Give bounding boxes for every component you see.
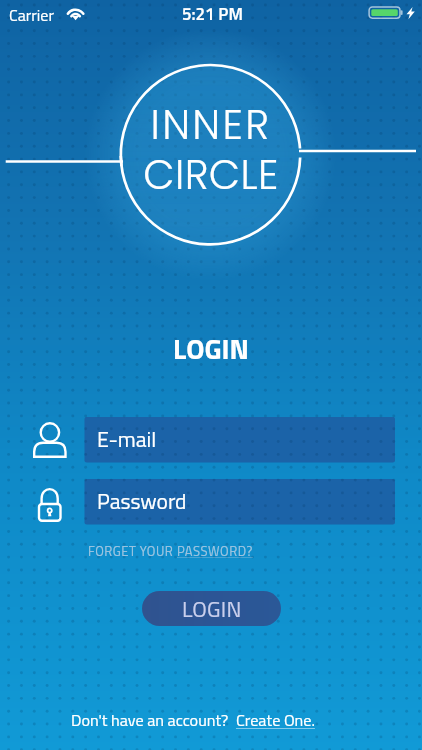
other: Account	[28, 419, 70, 461]
other: Status	[0, 0, 422, 750]
button[interactable]: E-mail	[84, 417, 395, 462]
staticText: CIRCLE	[0, 146, 422, 203]
staticText: LOGIN	[0, 327, 422, 370]
staticText: 5:21 PM	[182, 1, 243, 27]
staticText: Carrier	[9, 3, 54, 27]
button[interactable]: Password	[84, 479, 395, 524]
staticText: PASSWORD?	[177, 541, 253, 561]
button[interactable]: Don't have an account?	[71, 708, 315, 733]
staticText: INNER	[0, 96, 422, 153]
button[interactable]: FORGET YOUR	[88, 541, 253, 561]
staticText: Password	[97, 485, 187, 518]
staticText: Create One.	[236, 708, 315, 733]
button[interactable]: LOGIN	[142, 591, 281, 626]
staticText: Don't have an account?	[71, 708, 236, 733]
other: Password	[28, 481, 70, 523]
staticText: FORGET YOUR	[88, 541, 177, 561]
staticText: E-mail	[97, 423, 157, 456]
staticText: LOGIN	[182, 592, 242, 625]
